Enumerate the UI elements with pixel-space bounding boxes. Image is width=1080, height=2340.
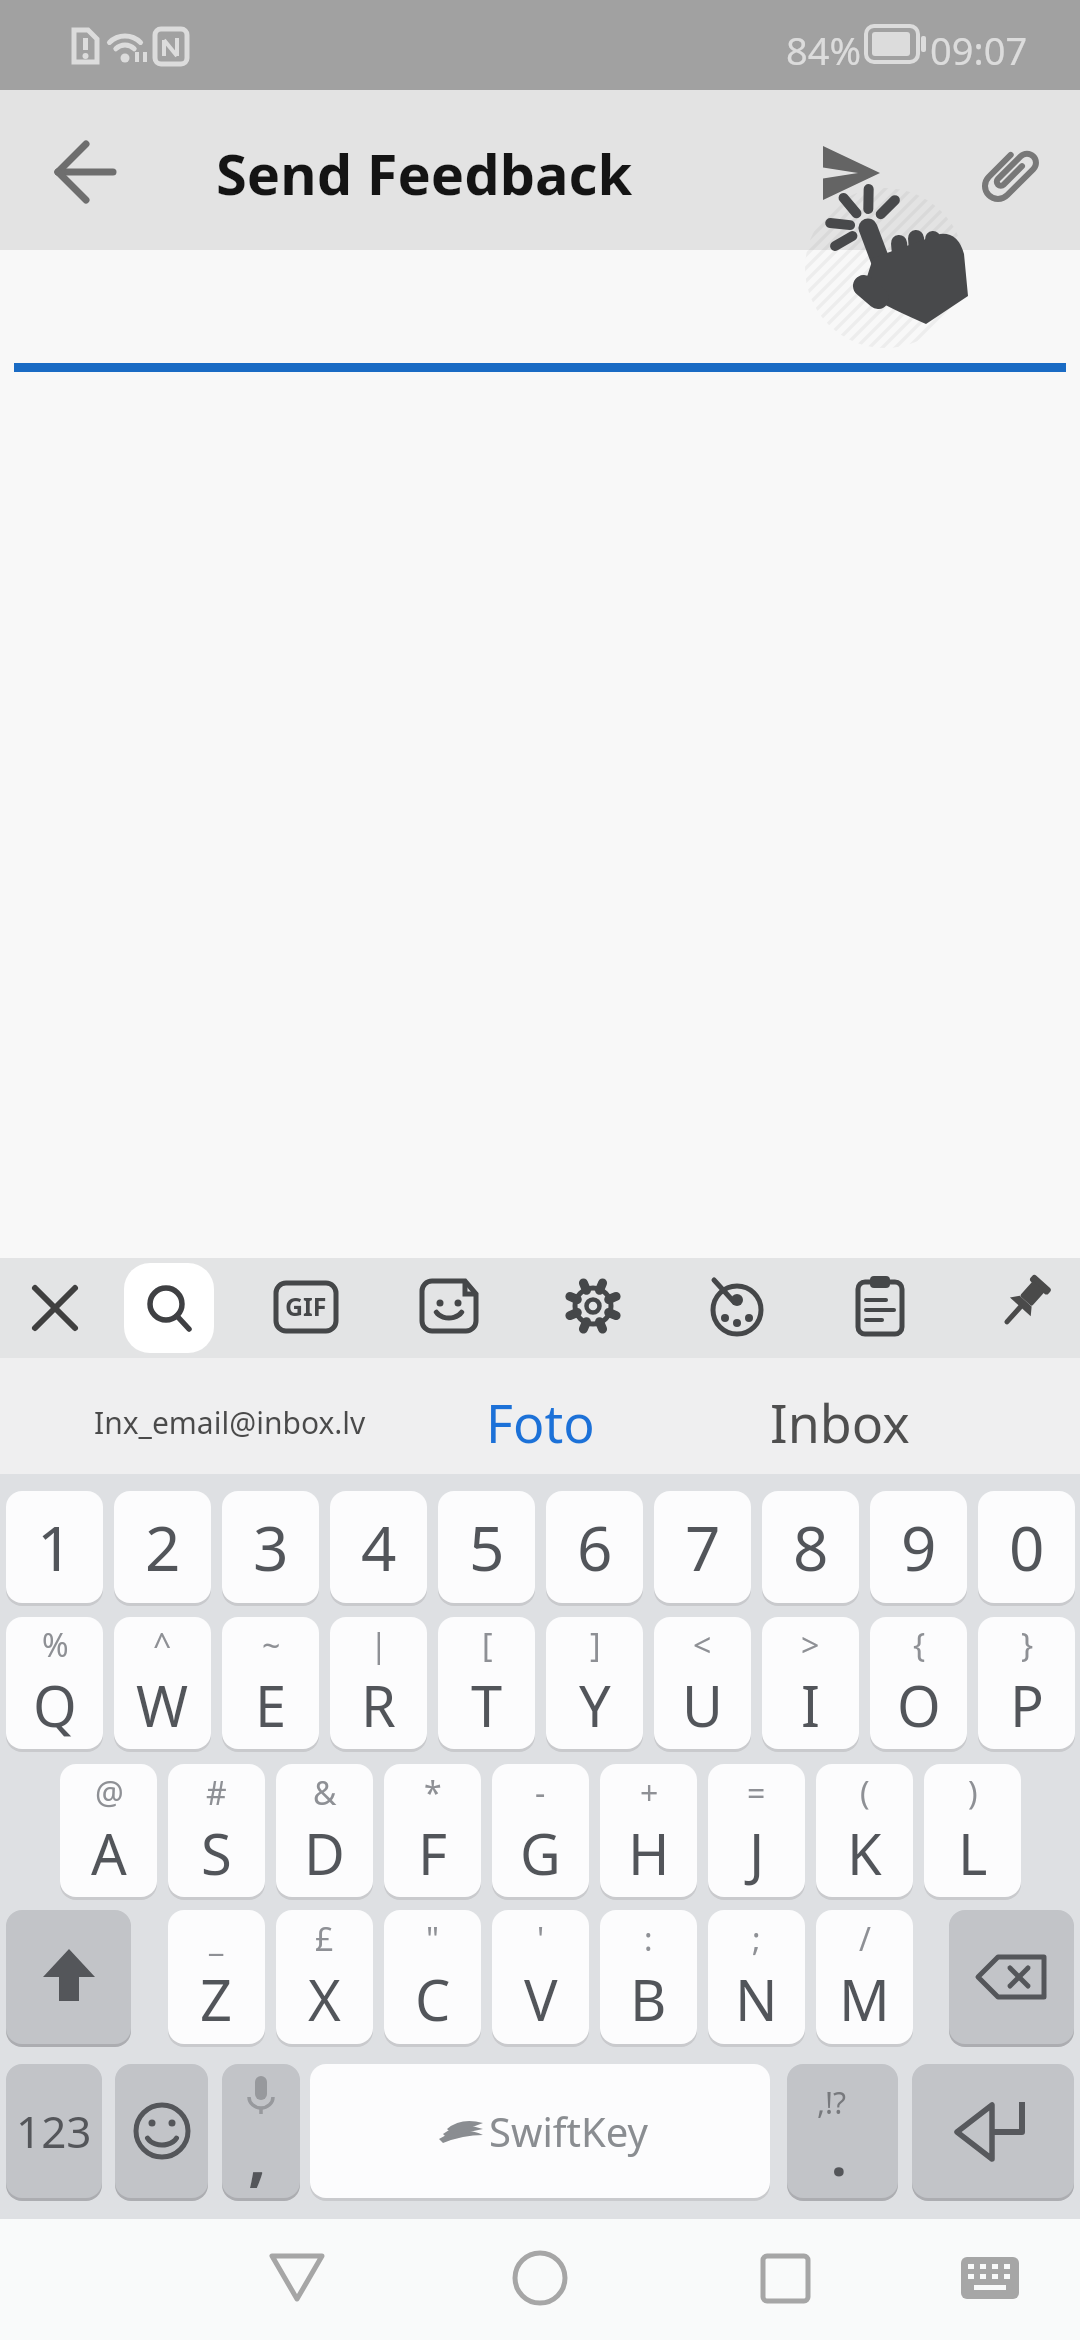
button[interactable]: SwiftKey (310, 2064, 770, 2198)
button[interactable]: % (6, 1617, 103, 1749)
button[interactable]: + (600, 1764, 697, 1897)
button[interactable]: ( (816, 1764, 913, 1897)
staticText: SwiftKey (489, 2104, 648, 2158)
button[interactable]: : (600, 1910, 697, 2044)
button[interactable] (912, 2064, 1074, 2198)
staticText: . (831, 2116, 847, 2192)
button[interactable]: Inbox (720, 1370, 960, 1474)
button[interactable]: [ (438, 1617, 535, 1749)
button[interactable] (30, 118, 140, 222)
staticText: Foto (486, 1387, 595, 1458)
button[interactable]: } (978, 1617, 1075, 1749)
button[interactable]: 5 (438, 1491, 535, 1603)
staticText: R (361, 1667, 396, 1743)
staticText: Inbox (770, 1387, 910, 1458)
button[interactable]: & (276, 1764, 373, 1897)
staticText: K (847, 1815, 882, 1891)
button[interactable]: ,!? (787, 2064, 898, 2198)
button[interactable] (949, 1910, 1074, 2044)
staticText: { (913, 1623, 926, 1667)
button[interactable]: 0 (978, 1491, 1075, 1603)
staticText: 123 (16, 2101, 92, 2161)
button[interactable]: " (384, 1910, 481, 2044)
staticText: : (644, 1917, 653, 1961)
button[interactable] (413, 1270, 485, 1342)
staticText: | (370, 1623, 388, 1667)
staticText: U (682, 1667, 723, 1743)
button[interactable]: # (168, 1764, 265, 1897)
staticText: 5 (469, 1505, 505, 1589)
staticText: N (735, 1961, 778, 2037)
button[interactable] (124, 1263, 214, 1353)
button[interactable]: < (654, 1617, 751, 1749)
button[interactable]: 8 (762, 1491, 859, 1603)
staticText: ^ (153, 1623, 172, 1667)
button[interactable] (940, 2219, 1040, 2319)
staticText: / (859, 1917, 871, 1961)
button[interactable]: ~ (222, 1617, 319, 1749)
button[interactable]: £ (276, 1910, 373, 2044)
button[interactable]: GIF (270, 1270, 342, 1342)
button[interactable] (844, 1270, 916, 1342)
staticText: @ (95, 1771, 124, 1815)
button[interactable] (15, 1268, 95, 1348)
button[interactable]: ' (492, 1910, 589, 2044)
button[interactable]: * (384, 1764, 481, 1897)
staticText: 0 (1009, 1505, 1045, 1589)
button[interactable]: - (492, 1764, 589, 1897)
staticText: = (747, 1771, 766, 1815)
staticText: 2 (145, 1505, 181, 1589)
staticText: A (91, 1815, 127, 1891)
button[interactable]: @ (60, 1764, 157, 1897)
button[interactable]: Foto (420, 1370, 660, 1474)
button[interactable] (735, 2219, 835, 2319)
button[interactable]: / (816, 1910, 913, 2044)
staticText: H (628, 1815, 670, 1891)
button[interactable]: 9 (870, 1491, 967, 1603)
button[interactable] (490, 2219, 590, 2319)
staticText: P (1010, 1667, 1044, 1743)
staticText: V (524, 1961, 558, 2037)
staticText: E (255, 1667, 287, 1743)
button[interactable]: 7 (654, 1491, 751, 1603)
button[interactable]: 4 (330, 1491, 427, 1603)
staticText: [ (482, 1623, 493, 1667)
button[interactable]: Inx_email@inbox.lv (60, 1370, 400, 1474)
button[interactable]: { (870, 1617, 967, 1749)
button[interactable]: > (762, 1617, 859, 1749)
staticText: M (839, 1961, 890, 2037)
button[interactable]: 123 (6, 2064, 102, 2198)
staticText: B (630, 1961, 667, 2037)
staticText: % (42, 1623, 69, 1667)
staticText: ] (590, 1623, 601, 1667)
staticText: Send Feedback (216, 135, 633, 211)
button[interactable]: 6 (546, 1491, 643, 1603)
button[interactable] (6, 1910, 131, 2044)
button[interactable]: = (708, 1764, 805, 1897)
button[interactable]: ; (708, 1910, 805, 2044)
button[interactable]: , (222, 2064, 300, 2198)
button[interactable] (115, 2064, 208, 2198)
staticText: 84% (786, 24, 862, 76)
button[interactable]: _ (168, 1910, 265, 2044)
button[interactable] (960, 120, 1060, 220)
button[interactable]: ] (546, 1617, 643, 1749)
button[interactable]: 3 (222, 1491, 319, 1603)
button[interactable] (800, 120, 900, 220)
button[interactable]: 2 (114, 1491, 211, 1603)
staticText: " (426, 1917, 440, 1961)
button[interactable]: ^ (114, 1617, 211, 1749)
button[interactable]: ) (924, 1764, 1021, 1897)
staticText: - (535, 1771, 546, 1815)
staticText: 09:07 (930, 24, 1028, 76)
button[interactable]: 1 (6, 1491, 103, 1603)
button[interactable] (557, 1270, 629, 1342)
button[interactable] (987, 1270, 1059, 1342)
button[interactable]: | (330, 1617, 427, 1749)
staticText: } (1021, 1623, 1034, 1667)
staticText: > (801, 1623, 820, 1667)
staticText: ) (968, 1771, 978, 1815)
button[interactable] (700, 1270, 772, 1342)
staticText: Q (33, 1667, 77, 1743)
button[interactable] (247, 2219, 347, 2319)
